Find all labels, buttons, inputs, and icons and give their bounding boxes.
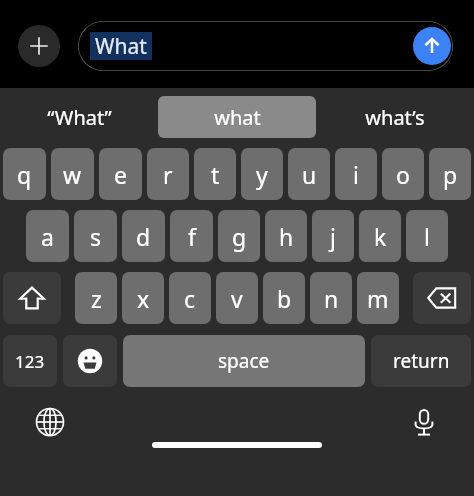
button[interactable]: 123 xyxy=(3,335,57,387)
button[interactable]: what’s xyxy=(316,96,474,138)
button[interactable]: What xyxy=(78,21,453,71)
staticText: u xyxy=(302,159,317,190)
button[interactable]: m xyxy=(357,272,399,324)
button[interactable]: space xyxy=(123,335,365,387)
staticText: l xyxy=(424,221,430,252)
button[interactable]: i xyxy=(335,148,377,200)
button[interactable]: “What” xyxy=(0,96,158,138)
staticText: what xyxy=(214,104,261,131)
staticText: q xyxy=(17,159,32,190)
staticText: g xyxy=(232,221,247,252)
staticText: p xyxy=(443,159,458,190)
button[interactable]: Emoji xyxy=(63,335,117,387)
staticText: m xyxy=(367,283,389,314)
button[interactable]: r xyxy=(147,148,189,200)
staticText: 123 xyxy=(15,350,45,373)
staticText: “What” xyxy=(47,104,112,131)
staticText: space xyxy=(218,348,270,374)
button[interactable]: y xyxy=(241,148,283,200)
button[interactable]: s xyxy=(74,210,117,262)
button[interactable]: d xyxy=(122,210,165,262)
staticText: n xyxy=(324,283,339,314)
button[interactable]: Shift xyxy=(3,272,61,324)
button[interactable]: c xyxy=(169,272,211,324)
staticText: f xyxy=(188,221,196,252)
staticText: c xyxy=(184,283,196,314)
button[interactable]: Dictate xyxy=(404,402,444,442)
button[interactable]: f xyxy=(170,210,213,262)
staticText: j xyxy=(330,221,336,252)
button[interactable]: p xyxy=(429,148,471,200)
staticText: b xyxy=(277,283,292,314)
staticText: s xyxy=(90,221,102,252)
button[interactable]: u xyxy=(288,148,330,200)
button[interactable]: w xyxy=(51,148,94,200)
button[interactable]: l xyxy=(406,210,448,262)
button[interactable]: Send xyxy=(413,27,451,65)
staticText: t xyxy=(211,159,220,190)
button[interactable]: g xyxy=(218,210,260,262)
staticText: v xyxy=(231,283,243,314)
button[interactable]: e xyxy=(99,148,142,200)
staticText: a xyxy=(41,221,54,252)
staticText: i xyxy=(353,159,359,190)
staticText: h xyxy=(279,221,294,252)
button[interactable]: Add attachment xyxy=(18,25,60,67)
staticText: y xyxy=(256,159,268,190)
button[interactable]: Change keyboard language xyxy=(30,402,70,442)
staticText: z xyxy=(91,283,102,314)
staticText: d xyxy=(136,221,151,252)
button[interactable]: j xyxy=(312,210,354,262)
button[interactable]: x xyxy=(122,272,164,324)
staticText: k xyxy=(374,221,387,252)
button[interactable]: a xyxy=(26,210,69,262)
button[interactable]: k xyxy=(359,210,401,262)
staticText: r xyxy=(163,159,173,190)
button[interactable]: n xyxy=(310,272,352,324)
button[interactable]: t xyxy=(194,148,236,200)
staticText: What xyxy=(95,32,147,60)
staticText: w xyxy=(63,159,82,190)
button[interactable]: v xyxy=(216,272,258,324)
button[interactable]: z xyxy=(75,272,117,324)
button[interactable]: what xyxy=(158,96,316,138)
staticText: e xyxy=(114,159,127,190)
button[interactable]: h xyxy=(265,210,307,262)
staticText: return xyxy=(393,348,450,374)
button[interactable]: q xyxy=(3,148,46,200)
staticText: x xyxy=(137,283,150,314)
button[interactable]: Backspace xyxy=(413,272,471,324)
staticText: what’s xyxy=(365,104,425,131)
button[interactable]: b xyxy=(263,272,305,324)
staticText: o xyxy=(396,159,410,190)
button[interactable]: return xyxy=(371,335,471,387)
button[interactable]: o xyxy=(382,148,424,200)
